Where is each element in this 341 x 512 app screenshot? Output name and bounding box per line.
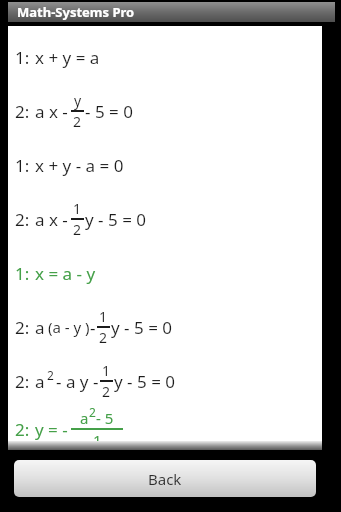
- staticText: 2: [89, 404, 96, 420]
- staticText: a: [35, 370, 45, 393]
- staticText: x + y - a = 0: [35, 154, 124, 177]
- staticText: 1: [99, 307, 108, 326]
- staticText: Math-Systems Pro: [17, 3, 135, 21]
- staticText: x = a - y: [35, 262, 96, 285]
- staticText: - a y -: [56, 370, 99, 393]
- staticText: a: [35, 316, 45, 339]
- staticText: 1:: [15, 262, 30, 285]
- staticText: 2:: [15, 418, 30, 441]
- staticText: 2: [47, 367, 54, 383]
- staticText: 2:: [15, 208, 30, 231]
- staticText: 2:: [15, 100, 30, 123]
- staticText: 2:: [15, 316, 30, 339]
- staticText: 1: [102, 361, 111, 380]
- staticText: - 5 = 0: [85, 100, 133, 123]
- staticText: y: [74, 91, 82, 110]
- staticText: a x -: [35, 208, 68, 231]
- staticText: y = -: [35, 418, 68, 441]
- staticText: 2: [73, 112, 82, 131]
- staticText: 2:: [15, 370, 30, 393]
- staticText: 1: [93, 430, 102, 450]
- staticText: (a - y ): [48, 317, 90, 337]
- staticText: 1:: [15, 46, 30, 69]
- staticText: y - 5 = 0: [114, 370, 175, 393]
- staticText: - 5: [96, 408, 114, 428]
- staticText: Back: [148, 469, 182, 489]
- staticText: a: [80, 408, 89, 428]
- staticText: 2: [102, 382, 111, 401]
- staticText: a x -: [35, 100, 68, 123]
- staticText: 1: [73, 199, 82, 218]
- button[interactable]: Back: [14, 460, 316, 497]
- staticText: y - 5 = 0: [111, 316, 172, 339]
- staticText: 1:: [15, 154, 30, 177]
- staticText: -: [90, 316, 96, 339]
- staticText: y - 5 = 0: [85, 208, 146, 231]
- staticText: 2: [99, 328, 108, 347]
- staticText: 2: [73, 220, 82, 239]
- staticText: x + y = a: [35, 46, 100, 69]
